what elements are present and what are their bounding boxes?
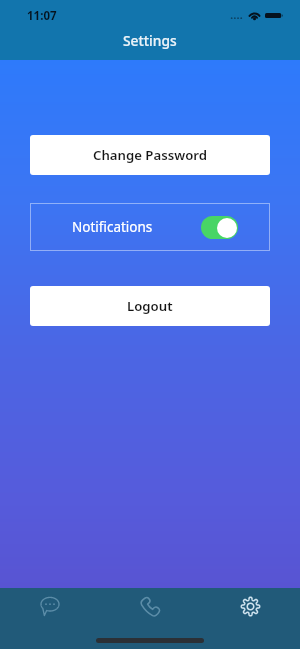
button[interactable]: Messages [0, 588, 100, 625]
staticText: Notifications [72, 218, 153, 236]
button[interactable]: Change Password [30, 135, 270, 175]
button[interactable]: Settings [200, 588, 300, 625]
button[interactable]: Notifications toggle [201, 216, 238, 239]
button[interactable]: Logout [30, 286, 270, 326]
staticText: Change Password [93, 146, 207, 164]
staticText: 11:07 [27, 8, 57, 24]
staticText: Settings [123, 31, 177, 50]
button[interactable]: Notifications [30, 203, 270, 251]
button[interactable]: Calls [100, 588, 200, 625]
staticText: Logout [127, 297, 173, 315]
